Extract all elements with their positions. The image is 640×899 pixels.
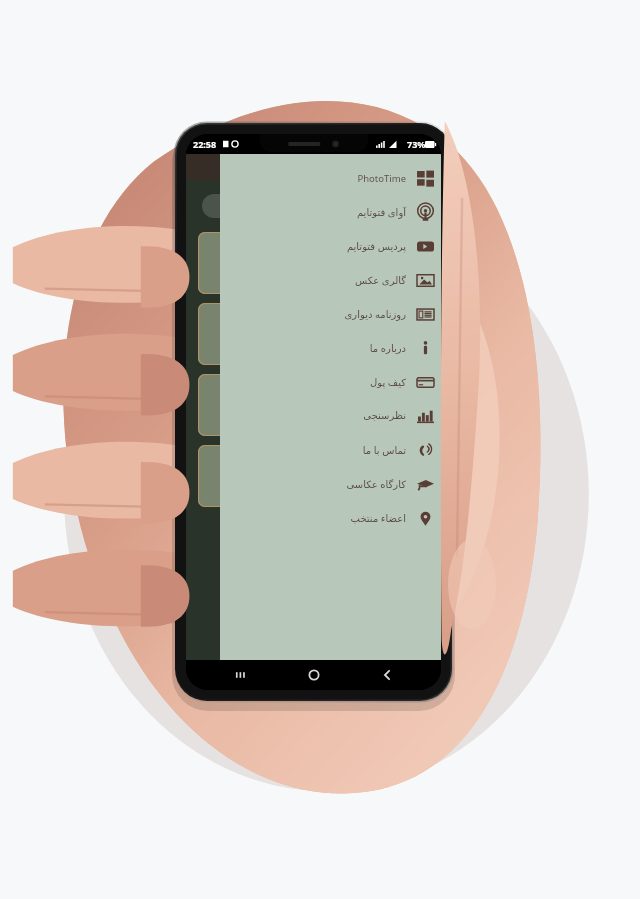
button[interactable]: بخش xyxy=(198,303,429,365)
staticText: گالری عکس xyxy=(354,273,406,287)
button[interactable]: Recent apps xyxy=(217,660,261,690)
staticText: درباره ما xyxy=(369,341,406,355)
staticText: اعضاء منتخب xyxy=(350,511,406,525)
staticText: کیف پول xyxy=(370,375,406,389)
button[interactable]: بخش xyxy=(198,445,429,507)
staticText: PhotoTime xyxy=(357,172,406,185)
staticText: تماس با ما xyxy=(362,443,406,457)
button[interactable]: Back xyxy=(366,660,410,690)
button[interactable]: PhotoTime xyxy=(220,161,441,195)
button[interactable]: Home xyxy=(292,660,336,690)
button[interactable]: اعضاء منتخب xyxy=(220,501,441,535)
button[interactable]: روزنامه دیواری xyxy=(220,297,441,331)
button[interactable]: ورود به حساب xyxy=(202,194,286,218)
staticText: 73% xyxy=(407,138,426,150)
button[interactable]: کیف پول xyxy=(220,365,441,399)
staticText: آوای فتوتایم xyxy=(356,205,406,219)
button[interactable]: کارگاه عکاسی xyxy=(220,467,441,501)
staticText: روزنامه دیواری xyxy=(344,307,406,321)
button[interactable]: درباره ما xyxy=(220,331,441,365)
staticText: نظرسنجی xyxy=(363,410,406,422)
button[interactable]: بخش xyxy=(198,232,429,294)
button[interactable]: گالری عکس xyxy=(220,263,441,297)
button[interactable]: تماس با ما xyxy=(220,433,441,467)
button[interactable]: نظرسنجی xyxy=(220,399,441,433)
button[interactable]: آوای فتوتایم xyxy=(220,195,441,229)
button[interactable]: بخش xyxy=(198,374,429,436)
staticText: کارگاه عکاسی xyxy=(346,477,406,491)
staticText: 22:58 xyxy=(193,138,217,150)
staticText: پردیس فتوتایم xyxy=(346,239,406,253)
button[interactable]: پردیس فتوتایم xyxy=(220,229,441,263)
